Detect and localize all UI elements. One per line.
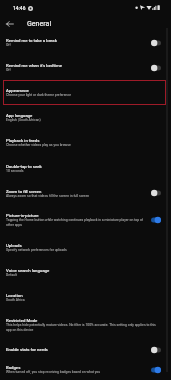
staticText: Enable stats for nerds bbox=[6, 347, 48, 352]
button[interactable]: Badges bbox=[0, 359, 171, 380]
button[interactable]: Zoom to fill screen bbox=[0, 181, 171, 205]
button[interactable]: Toggle off bbox=[150, 39, 161, 47]
button[interactable]: Appearance bbox=[0, 80, 171, 105]
staticText: Remind me to take a break bbox=[6, 38, 57, 43]
button[interactable]: Toggle on bbox=[150, 216, 161, 224]
staticText: Choose whether videos play as you browse bbox=[6, 143, 71, 147]
staticText: Restricted Mode bbox=[6, 318, 38, 323]
staticText: Badges bbox=[6, 365, 21, 370]
button[interactable]: Back bbox=[2, 16, 17, 31]
staticText: Tapping the Home button while watching c… bbox=[6, 218, 146, 227]
staticText: Picture-in-picture bbox=[6, 213, 39, 218]
button[interactable]: Voice search language bbox=[0, 260, 171, 285]
staticText: Specify network preferences for uploads bbox=[6, 248, 67, 252]
button[interactable]: Enable stats for nerds bbox=[0, 340, 171, 359]
staticText: General bbox=[27, 19, 52, 27]
staticText: Appearance bbox=[6, 88, 29, 93]
staticText: Voice search language bbox=[6, 268, 50, 273]
staticText: Off bbox=[6, 68, 11, 72]
button[interactable]: Location bbox=[0, 285, 171, 310]
button[interactable]: Picture-in-picture bbox=[0, 205, 171, 235]
staticText: Zoom to fill screen bbox=[6, 189, 42, 194]
staticText: Playback in feeds bbox=[6, 138, 40, 143]
button[interactable]: Toggle off bbox=[150, 346, 161, 354]
staticText: Double-tap to seek bbox=[6, 164, 42, 169]
staticText: When turned off, you stop receiving badg… bbox=[6, 370, 101, 374]
button[interactable]: Toggle on bbox=[150, 366, 161, 374]
staticText: 14:46 bbox=[13, 5, 26, 11]
button[interactable]: App language bbox=[0, 105, 171, 130]
staticText: Default bbox=[6, 273, 17, 277]
button[interactable]: Restricted Mode bbox=[0, 310, 171, 340]
staticText: Remind me when it's bedtime bbox=[6, 63, 62, 68]
button[interactable]: Toggle off bbox=[150, 189, 161, 197]
staticText: South Africa bbox=[6, 298, 25, 302]
button[interactable]: Remind me to take a break bbox=[0, 30, 171, 55]
staticText: English (South African) bbox=[6, 118, 41, 122]
staticText: 10 seconds bbox=[6, 169, 24, 173]
staticText: App language bbox=[6, 113, 33, 118]
button[interactable]: Playback in feeds bbox=[0, 130, 171, 155]
staticText: This helps hide potentially mature video… bbox=[6, 323, 161, 332]
staticText: Always zoom so that videos fill the scre… bbox=[6, 194, 90, 198]
staticText: Off bbox=[6, 43, 11, 47]
button[interactable]: Uploads bbox=[0, 235, 171, 260]
staticText: Location bbox=[6, 293, 23, 298]
button[interactable]: Double-tap to seek bbox=[0, 155, 171, 181]
button[interactable]: Remind me when it's bedtime bbox=[0, 55, 171, 80]
staticText: Uploads bbox=[6, 243, 22, 248]
button[interactable]: Toggle off bbox=[150, 64, 161, 72]
staticText: Choose your light or dark theme preferen… bbox=[6, 93, 71, 97]
